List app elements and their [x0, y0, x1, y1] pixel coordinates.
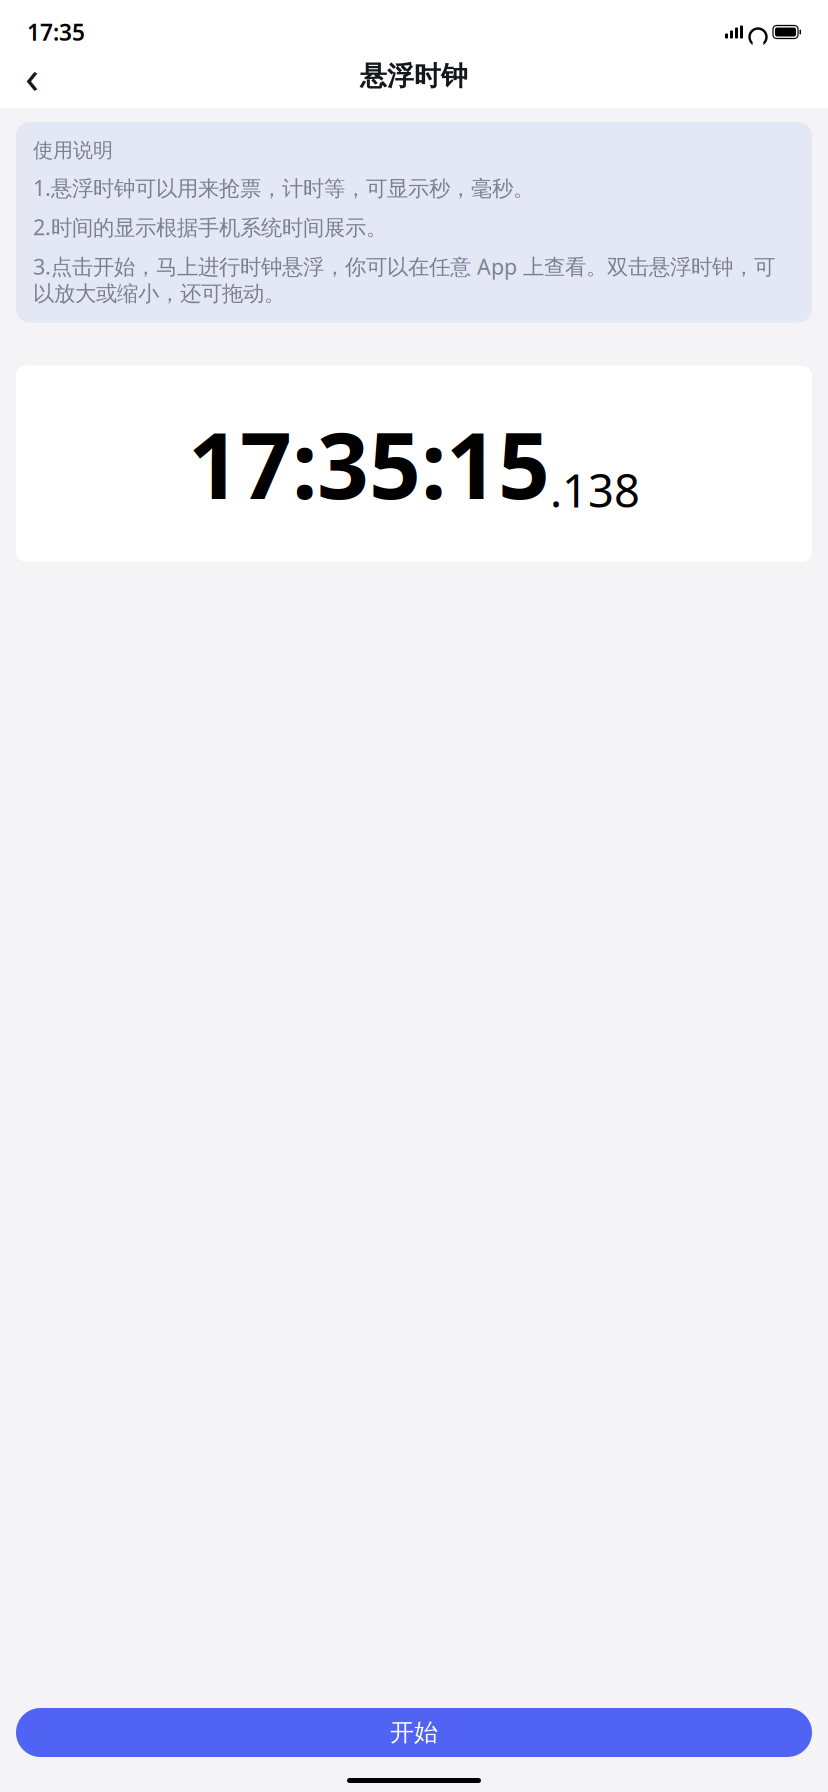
- staticText: 17:35:15: [188, 404, 550, 524]
- staticText: .138: [550, 460, 640, 520]
- staticText: 2.时间的显示根据手机系统时间展示。: [33, 213, 387, 241]
- staticText: 开始: [390, 1718, 438, 1747]
- staticText: 17:35: [27, 17, 85, 47]
- button[interactable]: 返回: [10, 54, 54, 98]
- staticText: 使用说明: [33, 138, 113, 163]
- staticText: 3.点击开始，马上进行时钟悬浮，你可以在任意 App 上查看。双击悬浮时钟，可以…: [33, 252, 775, 307]
- staticText: ‹: [25, 46, 39, 106]
- staticText: 悬浮时钟: [360, 60, 468, 92]
- staticText: 1.悬浮时钟可以用来抢票，计时等，可显示秒，毫秒。: [33, 174, 534, 202]
- button[interactable]: 开始: [16, 1708, 812, 1757]
